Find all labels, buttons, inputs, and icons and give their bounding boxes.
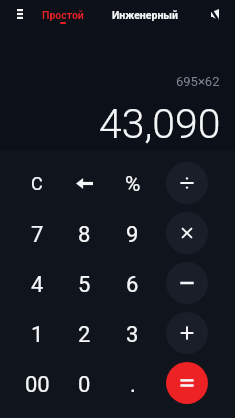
button[interactable]: 00 [13,358,61,408]
button[interactable]: 1 [13,308,61,358]
button[interactable]: Equals [166,362,208,404]
staticText: 1 [31,322,44,348]
button[interactable]: . [108,358,156,408]
button[interactable]: Divide [166,162,208,204]
staticText: C [31,173,43,194]
staticText: 43,090 [99,100,221,148]
staticText: 00 [25,372,50,398]
button[interactable]: Инженерный [106,7,184,23]
button[interactable]: C [13,158,61,208]
button[interactable]: 9 [108,208,156,258]
staticText: Инженерный [112,9,178,21]
staticText: 9 [126,222,139,248]
staticText: 5 [78,272,91,298]
button[interactable]: 7 [13,208,61,258]
staticText: 3 [126,322,139,348]
staticText: 2 [78,322,91,348]
button[interactable]: 5 [60,258,108,308]
staticText: Простой [42,9,84,21]
button[interactable]: Multiply [166,212,208,254]
button[interactable]: % [108,158,156,208]
button[interactable]: 8 [60,208,108,258]
staticText: % [125,172,141,197]
staticText: 6 [126,272,139,298]
button[interactable]: Menu [9,3,30,24]
button[interactable]: 0 [60,358,108,408]
button[interactable]: Sound off [204,4,225,25]
button[interactable]: 2 [60,308,108,358]
button[interactable]: Subtract [166,262,208,304]
button[interactable]: 4 [13,258,61,308]
staticText: 4 [31,272,44,298]
button[interactable]: 3 [108,308,156,358]
staticText: . [130,372,136,398]
button[interactable]: 6 [108,258,156,308]
staticText: 8 [78,222,91,248]
staticText: 0 [78,372,91,398]
button[interactable]: Простой [36,7,90,26]
button[interactable]: Backspace [60,158,108,208]
staticText: 695×62 [176,74,220,89]
staticText: 7 [31,222,44,248]
button[interactable]: Add [166,312,208,354]
